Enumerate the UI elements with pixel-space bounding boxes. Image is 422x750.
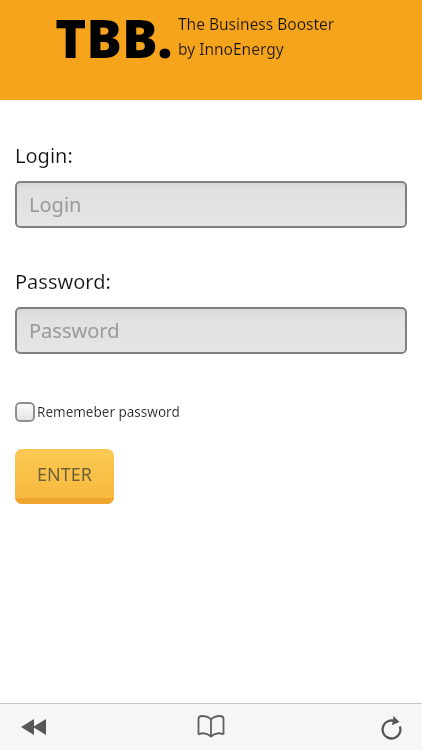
staticText: Login: [15,142,73,169]
staticText: by InnoEnergy [178,38,284,59]
button[interactable]: Password [15,307,407,354]
staticText: The Business Booster [178,13,335,34]
button[interactable]: Rememeber password [15,402,180,422]
staticText: Password: [15,268,111,295]
staticText: TBB. [55,1,173,73]
staticText: ENTER [37,462,92,487]
button[interactable]: Login [15,181,407,228]
staticText: Password [29,317,120,344]
staticText: Login [29,191,82,218]
button[interactable] [10,707,56,747]
button[interactable] [188,707,234,747]
staticText: Rememeber password [37,403,180,421]
button[interactable]: ENTER [15,449,114,504]
button[interactable] [364,707,410,747]
